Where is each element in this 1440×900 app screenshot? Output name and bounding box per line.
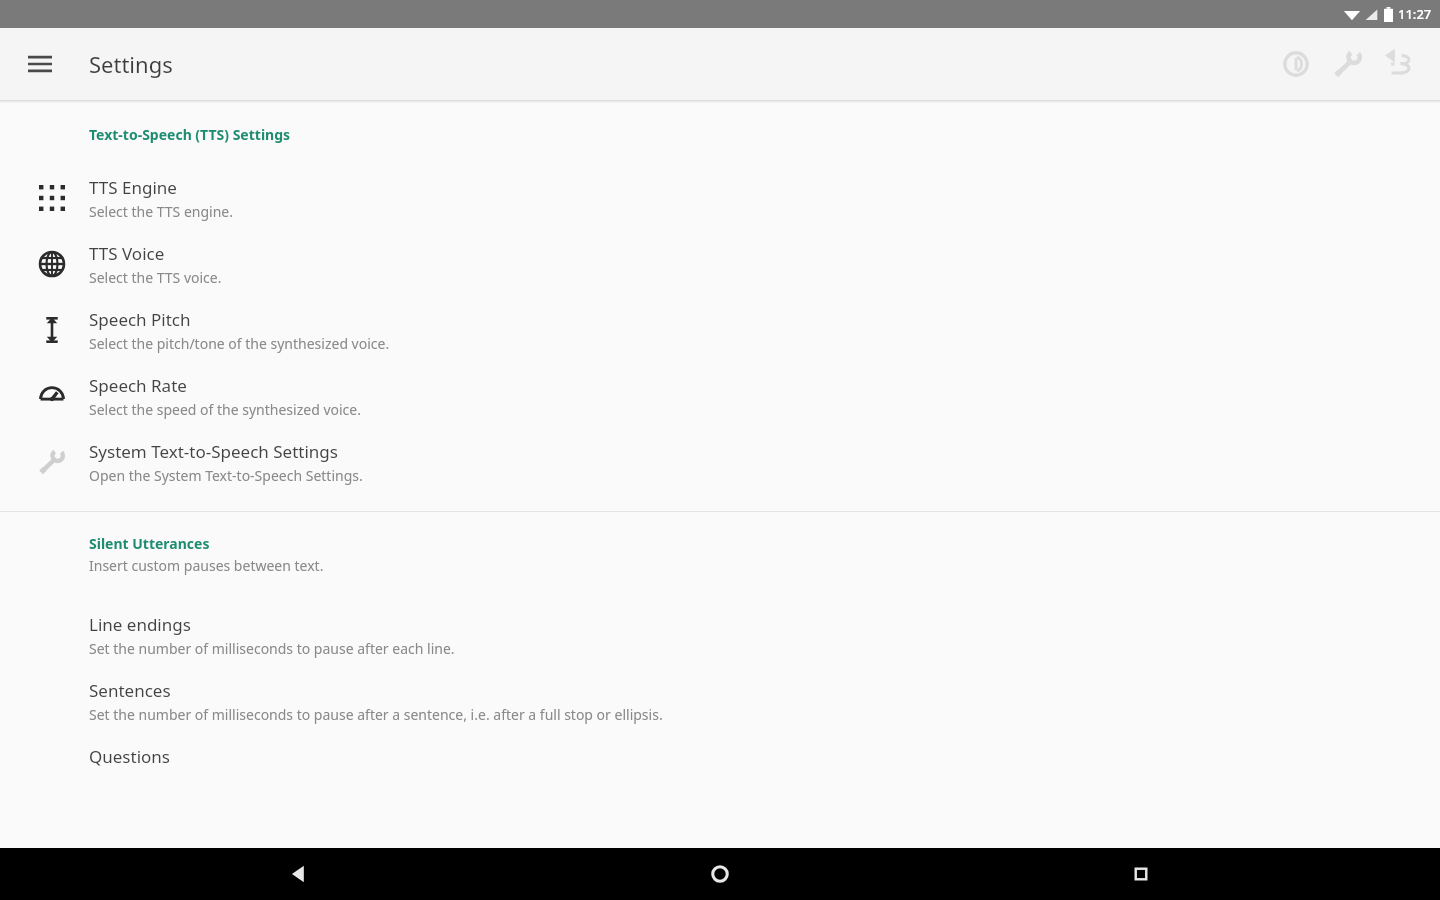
staticText: Set the number of milliseconds to pause … bbox=[89, 639, 455, 658]
staticText: Text-to-Speech (TTS) Settings bbox=[89, 125, 291, 144]
button[interactable]: Sentences bbox=[0, 667, 1440, 733]
staticText: TTS Engine bbox=[89, 176, 177, 199]
staticText: 11:27 bbox=[1398, 5, 1432, 23]
button[interactable]: Back bbox=[273, 848, 325, 900]
button[interactable]: TTS Voice bbox=[0, 230, 1440, 296]
staticText: Select the TTS voice. bbox=[89, 268, 222, 287]
button[interactable]: Recent apps bbox=[1115, 848, 1167, 900]
staticText: System Text-to-Speech Settings bbox=[89, 440, 338, 463]
staticText: Set the number of milliseconds to pause … bbox=[89, 705, 663, 724]
button[interactable]: Questions bbox=[0, 733, 1440, 797]
button[interactable]: System Text-to-Speech Settings bbox=[0, 428, 1440, 494]
staticText: Questions bbox=[89, 745, 170, 768]
staticText: Select the TTS engine. bbox=[89, 202, 233, 221]
staticText: Select the pitch/tone of the synthesized… bbox=[89, 334, 390, 353]
staticText: Line endings bbox=[89, 613, 191, 636]
staticText: Sentences bbox=[89, 679, 171, 702]
staticText: Open the System Text-to-Speech Settings. bbox=[89, 466, 363, 485]
button[interactable]: TTS Engine bbox=[0, 164, 1440, 230]
staticText: Speech Rate bbox=[89, 374, 187, 397]
staticText: Settings bbox=[89, 49, 173, 79]
staticText: Speech Pitch bbox=[89, 308, 191, 331]
staticText: Select the speed of the synthesized voic… bbox=[89, 400, 361, 419]
button[interactable]: Information bbox=[1270, 38, 1322, 90]
button[interactable]: Home bbox=[694, 848, 746, 900]
button[interactable]: Tools bbox=[1322, 38, 1374, 90]
staticText: TTS Voice bbox=[89, 242, 165, 265]
staticText: Silent Utterances bbox=[89, 534, 210, 553]
staticText: Insert custom pauses between text. bbox=[89, 556, 324, 575]
button[interactable]: Speech Rate bbox=[0, 362, 1440, 428]
button[interactable]: Speech Pitch bbox=[0, 296, 1440, 362]
button[interactable]: Line endings bbox=[0, 601, 1440, 667]
button[interactable]: History bbox=[1374, 38, 1426, 90]
button[interactable]: Open navigation menu bbox=[14, 38, 66, 90]
